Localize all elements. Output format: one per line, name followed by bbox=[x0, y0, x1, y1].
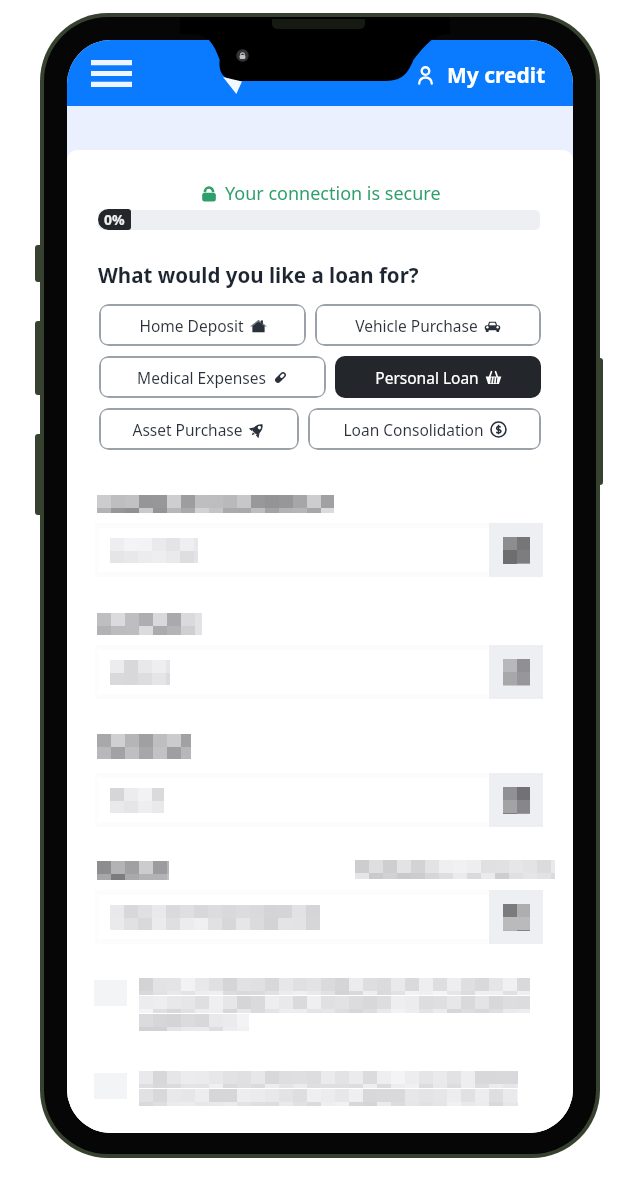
staticText: My credit bbox=[447, 61, 546, 90]
staticText: Your connection is secure bbox=[225, 181, 441, 206]
staticText: 0% bbox=[104, 210, 125, 229]
button[interactable] bbox=[95, 773, 543, 827]
button[interactable]: Asset Purchase bbox=[99, 408, 299, 450]
button[interactable]: Vehicle Purchase bbox=[315, 304, 541, 346]
button[interactable] bbox=[95, 523, 543, 577]
staticText: Personal Loan bbox=[375, 367, 479, 388]
staticText: What would you like a loan for? bbox=[98, 261, 419, 289]
staticText: Asset Purchase bbox=[132, 419, 243, 440]
button[interactable]: Loan Consolidation bbox=[308, 408, 541, 450]
staticText: Home Deposit bbox=[139, 315, 244, 336]
button[interactable] bbox=[95, 645, 543, 699]
button[interactable]: Open navigation menu bbox=[85, 50, 138, 96]
button[interactable] bbox=[94, 978, 530, 1031]
button[interactable]: My credit bbox=[415, 61, 546, 90]
button[interactable]: Home Deposit bbox=[99, 304, 306, 346]
staticText: Vehicle Purchase bbox=[355, 315, 478, 336]
button[interactable] bbox=[95, 890, 543, 944]
staticText: Loan Consolidation bbox=[343, 419, 484, 440]
staticText: Medical Expenses bbox=[137, 367, 266, 388]
button[interactable]: Personal Loan bbox=[335, 356, 541, 398]
button[interactable] bbox=[94, 1071, 518, 1106]
button[interactable]: Medical Expenses bbox=[99, 356, 326, 398]
